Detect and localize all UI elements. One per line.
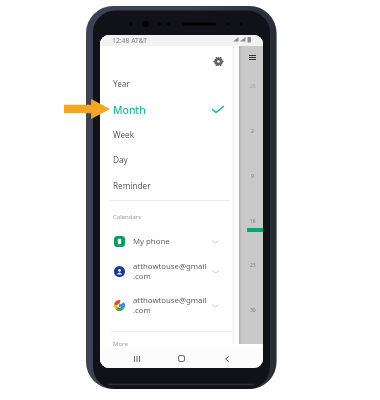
button[interactable]: atthowtouse@gmail .com — [100, 289, 239, 321]
button[interactable]: Settings — [206, 49, 230, 73]
staticText: 2 — [251, 128, 254, 135]
button[interactable]: Reminder — [100, 173, 239, 198]
button[interactable]: Menu — [245, 50, 259, 64]
button[interactable]: Month — [100, 97, 239, 122]
button[interactable]: Back — [218, 350, 235, 367]
staticText: 23 — [250, 262, 256, 269]
staticText: atthowtouse@gmail .com — [133, 295, 207, 315]
button[interactable]: Week — [100, 122, 239, 147]
staticText: Day — [113, 154, 128, 165]
staticText: 16 — [250, 218, 256, 225]
staticText: Calendars — [113, 213, 142, 221]
staticText: Week — [113, 129, 135, 140]
staticText: My phone — [133, 236, 170, 247]
staticText: 12:48 AT&T — [112, 36, 147, 45]
staticText: 30 — [250, 307, 256, 314]
staticText: Reminder — [113, 180, 151, 191]
staticText: More — [113, 340, 128, 348]
staticText: 9 — [251, 173, 254, 180]
staticText: Month — [113, 103, 146, 117]
button[interactable]: atthowtouse@gmail .com — [100, 255, 239, 287]
staticText: 26 — [250, 83, 256, 90]
button[interactable]: My phone — [100, 228, 239, 254]
button[interactable]: Day — [100, 147, 239, 172]
button[interactable]: Year — [100, 71, 239, 96]
staticText: Year — [113, 78, 130, 89]
button[interactable]: Recent apps — [128, 350, 145, 367]
staticText: atthowtouse@gmail .com — [133, 261, 207, 281]
button[interactable]: Home — [173, 350, 190, 367]
